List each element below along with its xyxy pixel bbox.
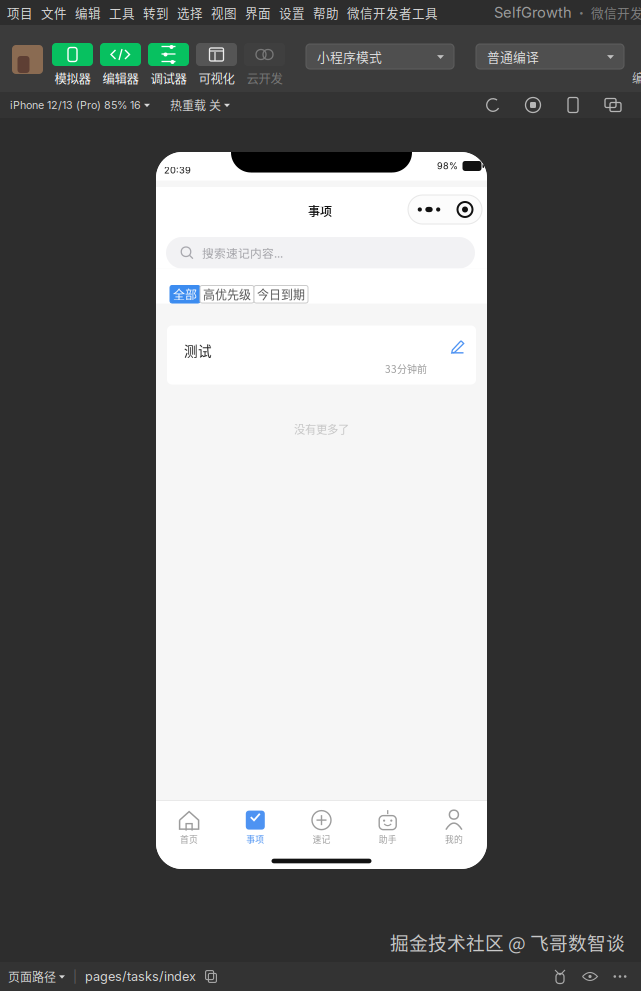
button[interactable]: 调试器 (148, 43, 189, 87)
staticText: 帮助 (313, 3, 339, 21)
button[interactable]: 文件 (37, 0, 71, 25)
staticText: 全部 (173, 286, 197, 303)
button[interactable]: 高优先级 (200, 285, 254, 303)
staticText: | (73, 969, 77, 984)
staticText: 我的 (445, 833, 463, 845)
staticText: 转到 (143, 3, 169, 21)
button[interactable]: 视图 (207, 0, 241, 25)
staticText: 搜索速记内容... (202, 244, 283, 261)
button[interactable]: iPhone 12/13 (Pro) 85% 16 (0, 90, 160, 120)
button[interactable]: 可视化 (196, 43, 237, 87)
staticText: 工具 (109, 3, 135, 21)
button[interactable]: Account avatar (12, 45, 43, 74)
staticText: 调试器 (150, 69, 186, 87)
staticText: 云开发 (246, 69, 282, 87)
button[interactable]: 设置 (275, 0, 309, 25)
button[interactable]: Preview (575, 962, 605, 990)
button[interactable]: 普通编译 (476, 44, 624, 69)
button[interactable]: 首页 (156, 801, 222, 849)
staticText: 测试 (184, 340, 212, 360)
button[interactable]: 选择 (173, 0, 207, 25)
staticText: 事项 (308, 202, 332, 219)
staticText: 页面路径 (8, 968, 56, 985)
staticText: 20:39 (164, 164, 191, 176)
button[interactable]: Detach window (593, 90, 633, 120)
staticText: 项目 (7, 3, 33, 21)
button[interactable]: 云开发 (244, 43, 285, 87)
button[interactable]: More (605, 962, 635, 990)
staticText: 界面 (245, 3, 271, 21)
button[interactable]: 热重载 关 (160, 90, 240, 120)
button[interactable]: 搜索速记内容... (166, 237, 475, 268)
button[interactable]: 帮助 (309, 0, 343, 25)
staticText: 热重载 关 (170, 96, 221, 114)
staticText: 小程序模式 (317, 47, 382, 66)
button[interactable]: Copy path (200, 962, 222, 990)
button[interactable]: 编辑 (71, 0, 105, 25)
staticText: 设置 (279, 3, 305, 21)
staticText: 视图 (211, 3, 237, 21)
staticText: 编 (632, 69, 641, 86)
button[interactable]: Refresh (473, 90, 513, 120)
staticText: 编辑 (75, 3, 101, 21)
staticText: 没有更多了 (294, 420, 349, 437)
button[interactable]: 界面 (241, 0, 275, 25)
staticText: 选择 (177, 3, 203, 21)
staticText: · 微信开发者工具 (572, 3, 641, 22)
staticText: 文件 (41, 3, 67, 21)
button[interactable]: 模拟器 (52, 43, 93, 87)
staticText: 33分钟前 (385, 361, 427, 376)
staticText: 编辑器 (102, 69, 138, 87)
staticText: 98% (437, 160, 458, 171)
button[interactable]: 转到 (139, 0, 173, 25)
staticText: 掘金技术社区 @ 飞哥数智谈 (390, 928, 625, 955)
staticText: 首页 (180, 833, 198, 845)
button[interactable]: 项目 (3, 0, 37, 25)
staticText: 今日到期 (257, 286, 305, 303)
button[interactable]: 编辑器 (100, 43, 141, 87)
staticText: 可视化 (198, 69, 234, 87)
button[interactable]: Mini program menu (408, 195, 482, 224)
button[interactable]: 微信开发者工具 (343, 0, 442, 25)
staticText: pages/tasks/index (85, 969, 196, 984)
staticText: iPhone 12/13 (Pro) 85% 16 (10, 98, 141, 111)
staticText: SelfGrowth (494, 4, 572, 21)
staticText: 高优先级 (203, 286, 251, 303)
staticText: 速记 (312, 833, 330, 845)
button[interactable]: 今日到期 (254, 285, 308, 303)
button[interactable]: 我的 (421, 801, 487, 849)
button[interactable]: 页面路径 (0, 968, 65, 985)
button[interactable]: 事项 (222, 801, 288, 849)
button[interactable]: 速记 (288, 801, 355, 849)
staticText: 助手 (379, 833, 397, 845)
staticText: 微信开发者工具 (347, 3, 438, 21)
button[interactable]: Debug (545, 962, 575, 990)
button[interactable]: 全部 (170, 285, 200, 303)
button[interactable]: 工具 (105, 0, 139, 25)
staticText: 事项 (246, 833, 264, 845)
staticText: 模拟器 (54, 69, 90, 87)
button[interactable]: 小程序模式 (306, 44, 454, 69)
button[interactable]: Device (553, 90, 593, 120)
staticText: 普通编译 (487, 47, 539, 66)
button[interactable]: 助手 (355, 801, 421, 849)
button[interactable]: 测试 (167, 325, 476, 384)
button[interactable]: Record (513, 90, 553, 120)
